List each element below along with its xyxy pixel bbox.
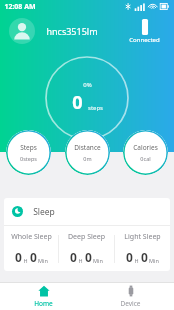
button[interactable]: Home [0,283,87,310]
button[interactable]: Calories [123,130,168,175]
staticText: Min [93,257,103,264]
staticText: 0 [85,249,92,265]
staticText: Calories [133,143,158,152]
staticText: steps [88,104,103,112]
staticText: H [23,257,28,264]
button[interactable]: Distance [65,130,110,175]
staticText: Min [38,257,48,264]
staticText: 0 [15,249,22,265]
staticText: Steps [20,143,37,152]
button[interactable]: Device connected [127,19,162,44]
staticText: Home [34,299,53,308]
staticText: Whole Sleep [11,232,52,242]
staticText: 0 [72,90,83,115]
staticText: 0 [141,249,148,265]
button[interactable]: Sleep [4,198,170,271]
staticText: Distance [74,143,101,152]
staticText: H [134,257,139,264]
staticText: Deep Sleep [68,232,105,242]
button[interactable]: Steps [6,130,51,175]
staticText: 0m [83,155,92,162]
staticText: Sleep [33,206,55,218]
staticText: 0% [83,81,92,89]
staticText: Min [149,257,159,264]
staticText: Connected [129,36,160,44]
staticText: 0steps [20,155,37,162]
staticText: 0 [30,249,37,265]
button[interactable]: Profile avatar [9,18,35,44]
staticText: 0cal [140,155,151,162]
staticText: H [78,257,83,264]
staticText: 12:08 AM [4,2,36,12]
button[interactable]: Device [87,283,174,310]
staticText: Device [120,299,141,308]
staticText: Light Sleep [124,232,161,242]
staticText: 0 [126,249,133,265]
staticText: 0 [70,249,77,265]
staticText: hncs3515lm [46,25,98,37]
